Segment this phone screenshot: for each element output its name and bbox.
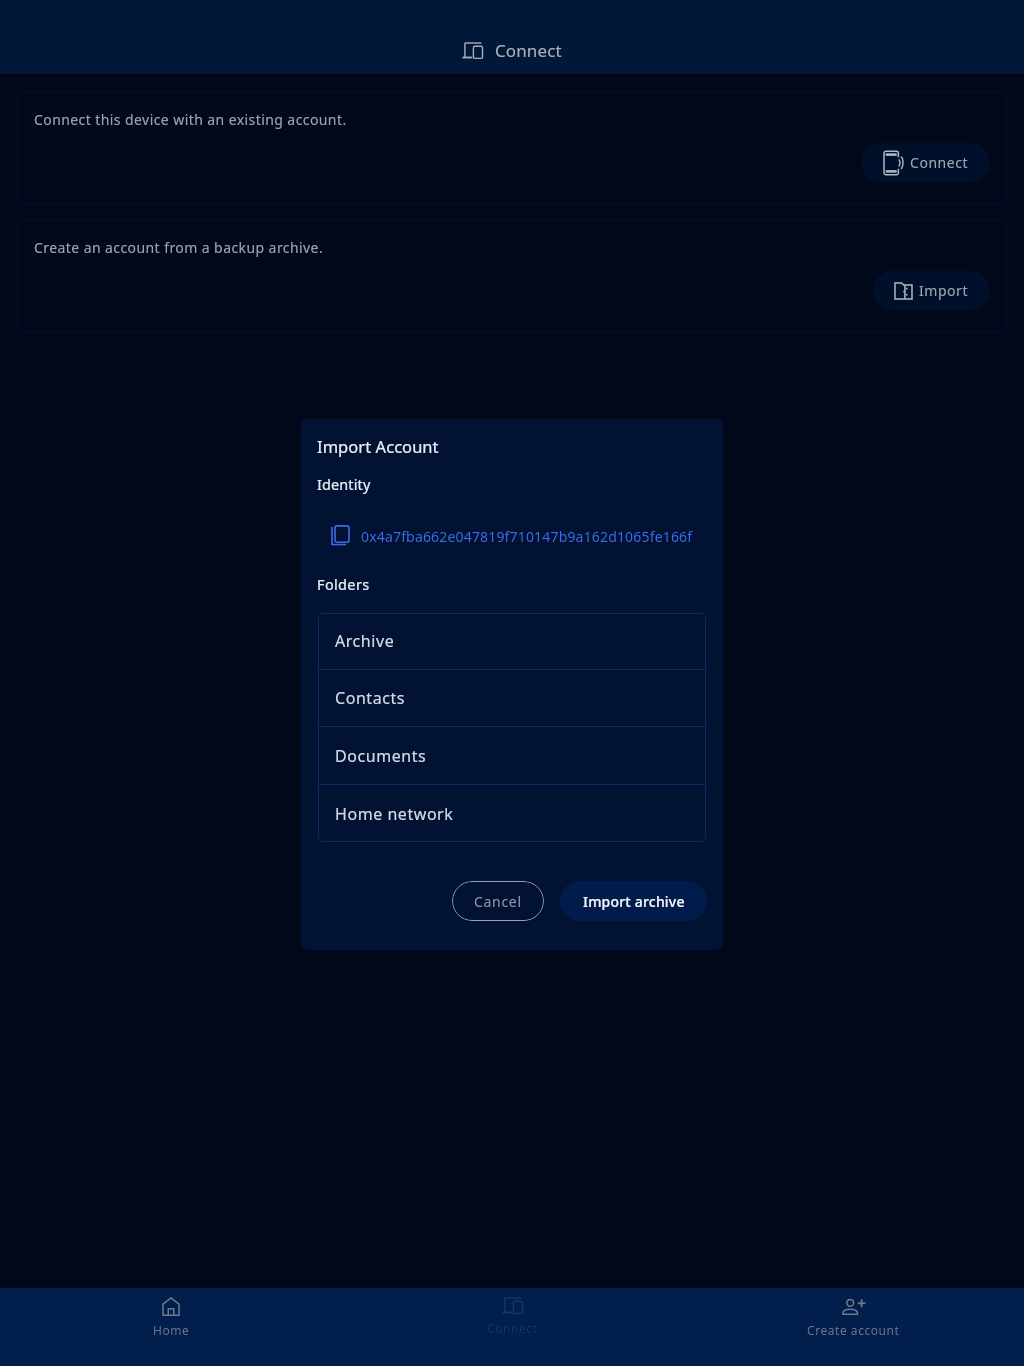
button[interactable]: Copy identity address — [331, 522, 693, 550]
staticText: Identity — [317, 474, 371, 494]
staticText: Connect — [487, 1320, 538, 1336]
staticText: Import Account — [317, 435, 439, 457]
button[interactable]: Connect — [861, 143, 990, 182]
button[interactable]: Archive — [318, 613, 706, 669]
staticText: Create an account from a backup archive. — [34, 238, 324, 257]
button[interactable]: Contacts — [318, 670, 706, 726]
staticText: Contacts — [335, 687, 405, 709]
staticText: Import archive — [583, 892, 685, 911]
button[interactable]: Cancel — [452, 881, 544, 921]
staticText: Connect — [495, 39, 562, 62]
button[interactable]: Home — [0, 1288, 342, 1366]
button[interactable]: Import archive — [560, 881, 707, 921]
staticText: Home network — [335, 803, 454, 825]
staticText: Folders — [317, 574, 370, 594]
staticText: 0x4a7fba662e047819f710147b9a162d1065fe16… — [361, 527, 693, 546]
staticText: Connect — [910, 153, 969, 172]
button[interactable]: Create account — [683, 1288, 1024, 1366]
staticText: Create account — [807, 1322, 900, 1338]
staticText: Cancel — [474, 892, 522, 911]
staticText: Documents — [335, 745, 427, 767]
staticText: Archive — [335, 630, 395, 652]
staticText: Home — [153, 1322, 190, 1338]
staticText: Connect this device with an existing acc… — [34, 110, 347, 129]
button[interactable]: Import — [873, 271, 990, 310]
button[interactable]: Home network — [318, 785, 706, 842]
button[interactable]: Documents — [318, 727, 706, 784]
staticText: Import — [919, 281, 969, 300]
